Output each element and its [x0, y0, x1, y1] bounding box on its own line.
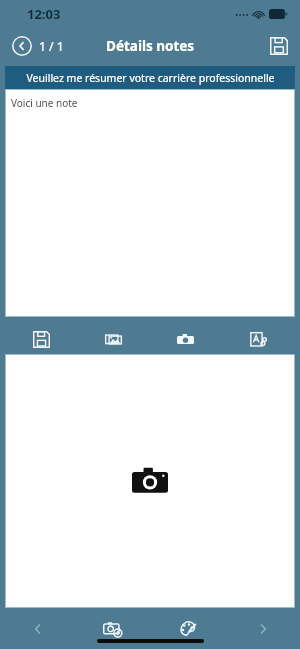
- button[interactable]: Voici une note: [5, 89, 295, 317]
- button[interactable]: Draw: [150, 608, 225, 649]
- button[interactable]: 1 / 1: [8, 33, 68, 59]
- button[interactable]: Add photo: [75, 608, 150, 649]
- staticText: Veuillez me résumer votre carrière profe…: [26, 71, 275, 85]
- button[interactable]: Pick from gallery: [77, 325, 149, 354]
- staticText: Voici une note: [11, 96, 78, 110]
- button[interactable]: Add photo: [5, 354, 295, 608]
- staticText: 12:03: [27, 5, 61, 23]
- button[interactable]: Save: [266, 33, 292, 59]
- button[interactable]: Save note: [5, 325, 77, 354]
- button[interactable]: Next: [225, 608, 300, 649]
- staticText: 1 / 1: [39, 38, 64, 54]
- button[interactable]: Take photo: [149, 325, 222, 354]
- button[interactable]: Previous: [0, 608, 75, 649]
- staticText: Détails notes: [106, 37, 195, 55]
- button[interactable]: Annotate: [222, 325, 295, 354]
